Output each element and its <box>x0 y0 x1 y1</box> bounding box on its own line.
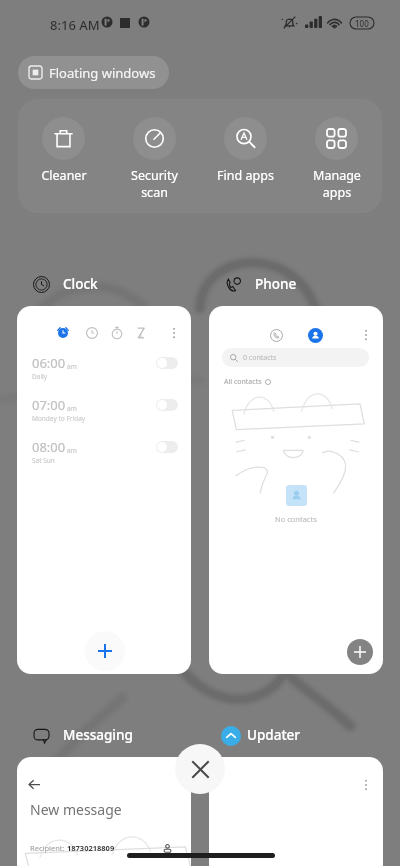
staticText: Updater <box>247 726 301 744</box>
staticText: No contacts <box>275 514 317 524</box>
staticText: Sat Sun <box>32 456 55 465</box>
button[interactable]: 0 contacts <box>222 348 369 367</box>
staticText: 8:16 AM <box>50 16 100 34</box>
button[interactable]: Security scan <box>123 117 186 201</box>
button[interactable]: 0 contacts <box>209 306 383 674</box>
staticText: New message <box>30 800 122 819</box>
staticText: Find apps <box>217 167 274 184</box>
staticText: Clock <box>63 275 98 293</box>
staticText: Floating windows <box>49 64 156 82</box>
button[interactable]: Find apps <box>214 117 277 184</box>
button[interactable]: 06:00 <box>17 306 191 674</box>
staticText: am <box>67 446 77 455</box>
staticText: Daily <box>32 372 48 381</box>
staticText: 06:00 <box>32 354 66 372</box>
staticText: All contacts <box>224 377 262 387</box>
button[interactable]: Clear all <box>175 744 225 794</box>
button[interactable]: Manage apps <box>305 117 368 201</box>
button[interactable]: Add contact <box>347 639 373 665</box>
button[interactable]: Toggle alarm <box>156 357 178 369</box>
staticText: Security scan <box>131 167 178 201</box>
button[interactable]: New message <box>17 757 191 866</box>
staticText: Recipient: <box>30 843 65 853</box>
staticText: 08:00 <box>32 438 66 456</box>
button[interactable]: Floating windows <box>18 56 169 89</box>
staticText: 0 contacts <box>243 353 277 363</box>
staticText: Phone <box>255 275 297 293</box>
staticText: Monday to Friday <box>32 414 86 423</box>
staticText: am <box>67 362 77 371</box>
staticText: 07:00 <box>32 396 66 414</box>
staticText: 100 <box>355 18 369 29</box>
button[interactable]: Add alarm <box>85 631 125 671</box>
staticText: am <box>67 404 77 413</box>
staticText: Manage apps <box>313 167 361 201</box>
button[interactable] <box>209 757 383 866</box>
button[interactable]: Toggle alarm <box>156 399 178 411</box>
staticText: 18730218809 <box>67 843 115 853</box>
staticText: Messaging <box>63 726 133 744</box>
button[interactable]: Cleaner <box>32 117 95 184</box>
staticText: Cleaner <box>41 167 87 184</box>
button[interactable]: Toggle alarm <box>156 441 178 453</box>
